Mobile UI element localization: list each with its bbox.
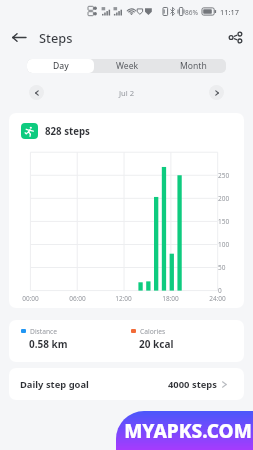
button[interactable]: Daily step goal — [9, 368, 244, 400]
staticText: 20 kcal — [139, 337, 174, 351]
staticText: 06:00 — [69, 294, 86, 303]
staticText: 250 — [218, 171, 230, 180]
staticText: 828 steps — [45, 125, 90, 138]
staticText: Month — [180, 60, 207, 72]
staticText: 0 — [218, 286, 222, 295]
staticText: Steps — [39, 29, 73, 46]
staticText: 11:17 — [220, 7, 239, 17]
staticText: Day — [53, 60, 69, 72]
staticText: Distance — [30, 327, 58, 336]
button[interactable]: Next day — [209, 85, 224, 100]
button[interactable]: Month — [160, 59, 226, 73]
staticText: 200 — [218, 194, 230, 203]
staticText: 86% — [185, 8, 199, 17]
staticText: Calories — [140, 327, 166, 336]
staticText: 100 — [218, 240, 230, 249]
staticText: 4000 steps — [168, 378, 217, 391]
button[interactable]: Previous day — [29, 85, 44, 100]
staticText: 00:00 — [22, 294, 39, 303]
staticText: MYAPKS.COM — [124, 418, 252, 444]
staticText: Jul 2 — [119, 88, 135, 98]
button[interactable]: Back — [5, 23, 33, 51]
staticText: 150 — [218, 217, 230, 226]
staticText: 0.58 km — [29, 337, 68, 351]
button[interactable]: Day — [27, 59, 94, 73]
staticText: Daily step goal — [20, 378, 89, 391]
staticText: Week — [116, 60, 139, 72]
button[interactable]: Week — [94, 59, 160, 73]
staticText: 12:00 — [115, 294, 132, 303]
button[interactable]: Share — [221, 23, 249, 51]
staticText: 18:00 — [162, 294, 179, 303]
staticText: 50 — [218, 263, 226, 272]
staticText: 24:00 — [209, 294, 226, 303]
